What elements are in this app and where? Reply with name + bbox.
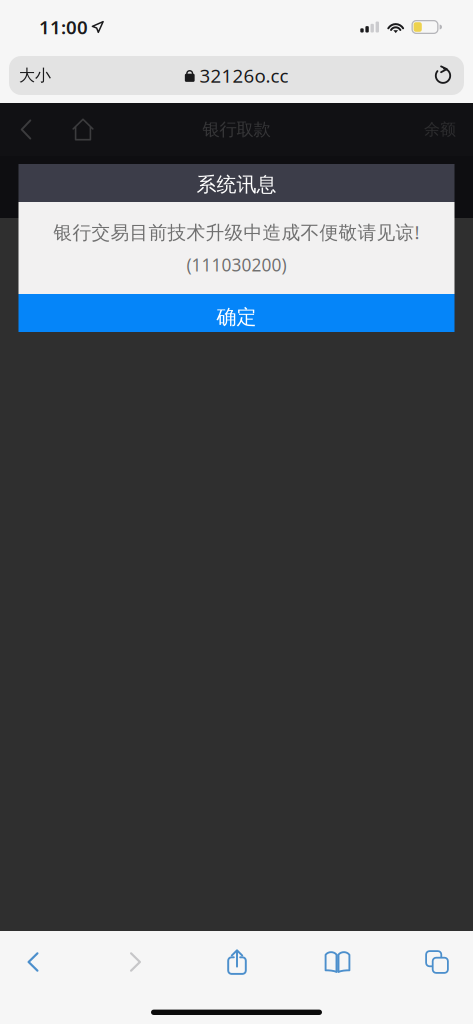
staticText: 11:00 — [39, 15, 88, 39]
button[interactable]: 余额 — [424, 103, 473, 156]
button[interactable]: Forward — [103, 931, 167, 993]
staticText: 银行交易目前技术升级中造成不便敬请见谅! — [53, 220, 419, 244]
staticText: 大小 — [19, 66, 51, 85]
staticText: 32126o.cc — [199, 63, 288, 88]
button[interactable]: Tabs — [407, 931, 467, 993]
staticText: (111030200) — [186, 253, 286, 276]
button[interactable]: Reload page — [422, 56, 464, 95]
button[interactable]: 确定 — [18, 294, 454, 332]
staticText: 系统讯息 — [196, 172, 276, 197]
button[interactable]: 大小 — [9, 56, 77, 95]
button[interactable]: Back — [0, 103, 52, 156]
button[interactable]: Bookmarks — [306, 931, 368, 993]
staticText: 银行取款 — [202, 119, 270, 140]
button[interactable]: Home — [52, 103, 114, 156]
button[interactable]: Back — [1, 931, 65, 993]
staticText: 余额 — [424, 120, 456, 139]
staticText: 确定 — [216, 305, 256, 329]
button[interactable]: Share — [206, 931, 268, 993]
